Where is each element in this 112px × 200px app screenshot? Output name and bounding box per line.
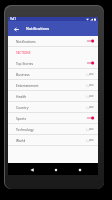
staticText: Entertainment xyxy=(16,83,87,87)
staticText: Sports xyxy=(16,116,87,120)
staticText: Top Stories xyxy=(16,61,87,65)
staticText: Notifications xyxy=(16,39,87,43)
button[interactable]: Notifications xyxy=(8,36,98,46)
button[interactable]: Business xyxy=(8,69,98,79)
button[interactable]: Country xyxy=(8,102,98,112)
staticText: Health xyxy=(16,94,87,98)
staticText: Country xyxy=(16,105,87,109)
button[interactable]: Technology xyxy=(8,124,98,134)
staticText: SECTIONS xyxy=(16,51,31,55)
button[interactable]: Back xyxy=(12,25,20,33)
button[interactable]: Sports xyxy=(8,113,98,123)
button[interactable]: Top Stories xyxy=(8,58,98,68)
button[interactable]: Recent apps xyxy=(76,166,84,174)
button[interactable]: Home xyxy=(52,166,60,174)
staticText: Business xyxy=(16,72,87,76)
button[interactable]: Health xyxy=(8,91,98,101)
button[interactable]: World xyxy=(8,135,98,145)
staticText: Technology xyxy=(16,127,87,131)
button[interactable]: Back xyxy=(28,166,36,174)
staticText: World xyxy=(16,138,87,142)
staticText: 9:41 xyxy=(10,17,16,21)
staticText: Notifications xyxy=(26,26,50,31)
button[interactable]: Entertainment xyxy=(8,80,98,90)
